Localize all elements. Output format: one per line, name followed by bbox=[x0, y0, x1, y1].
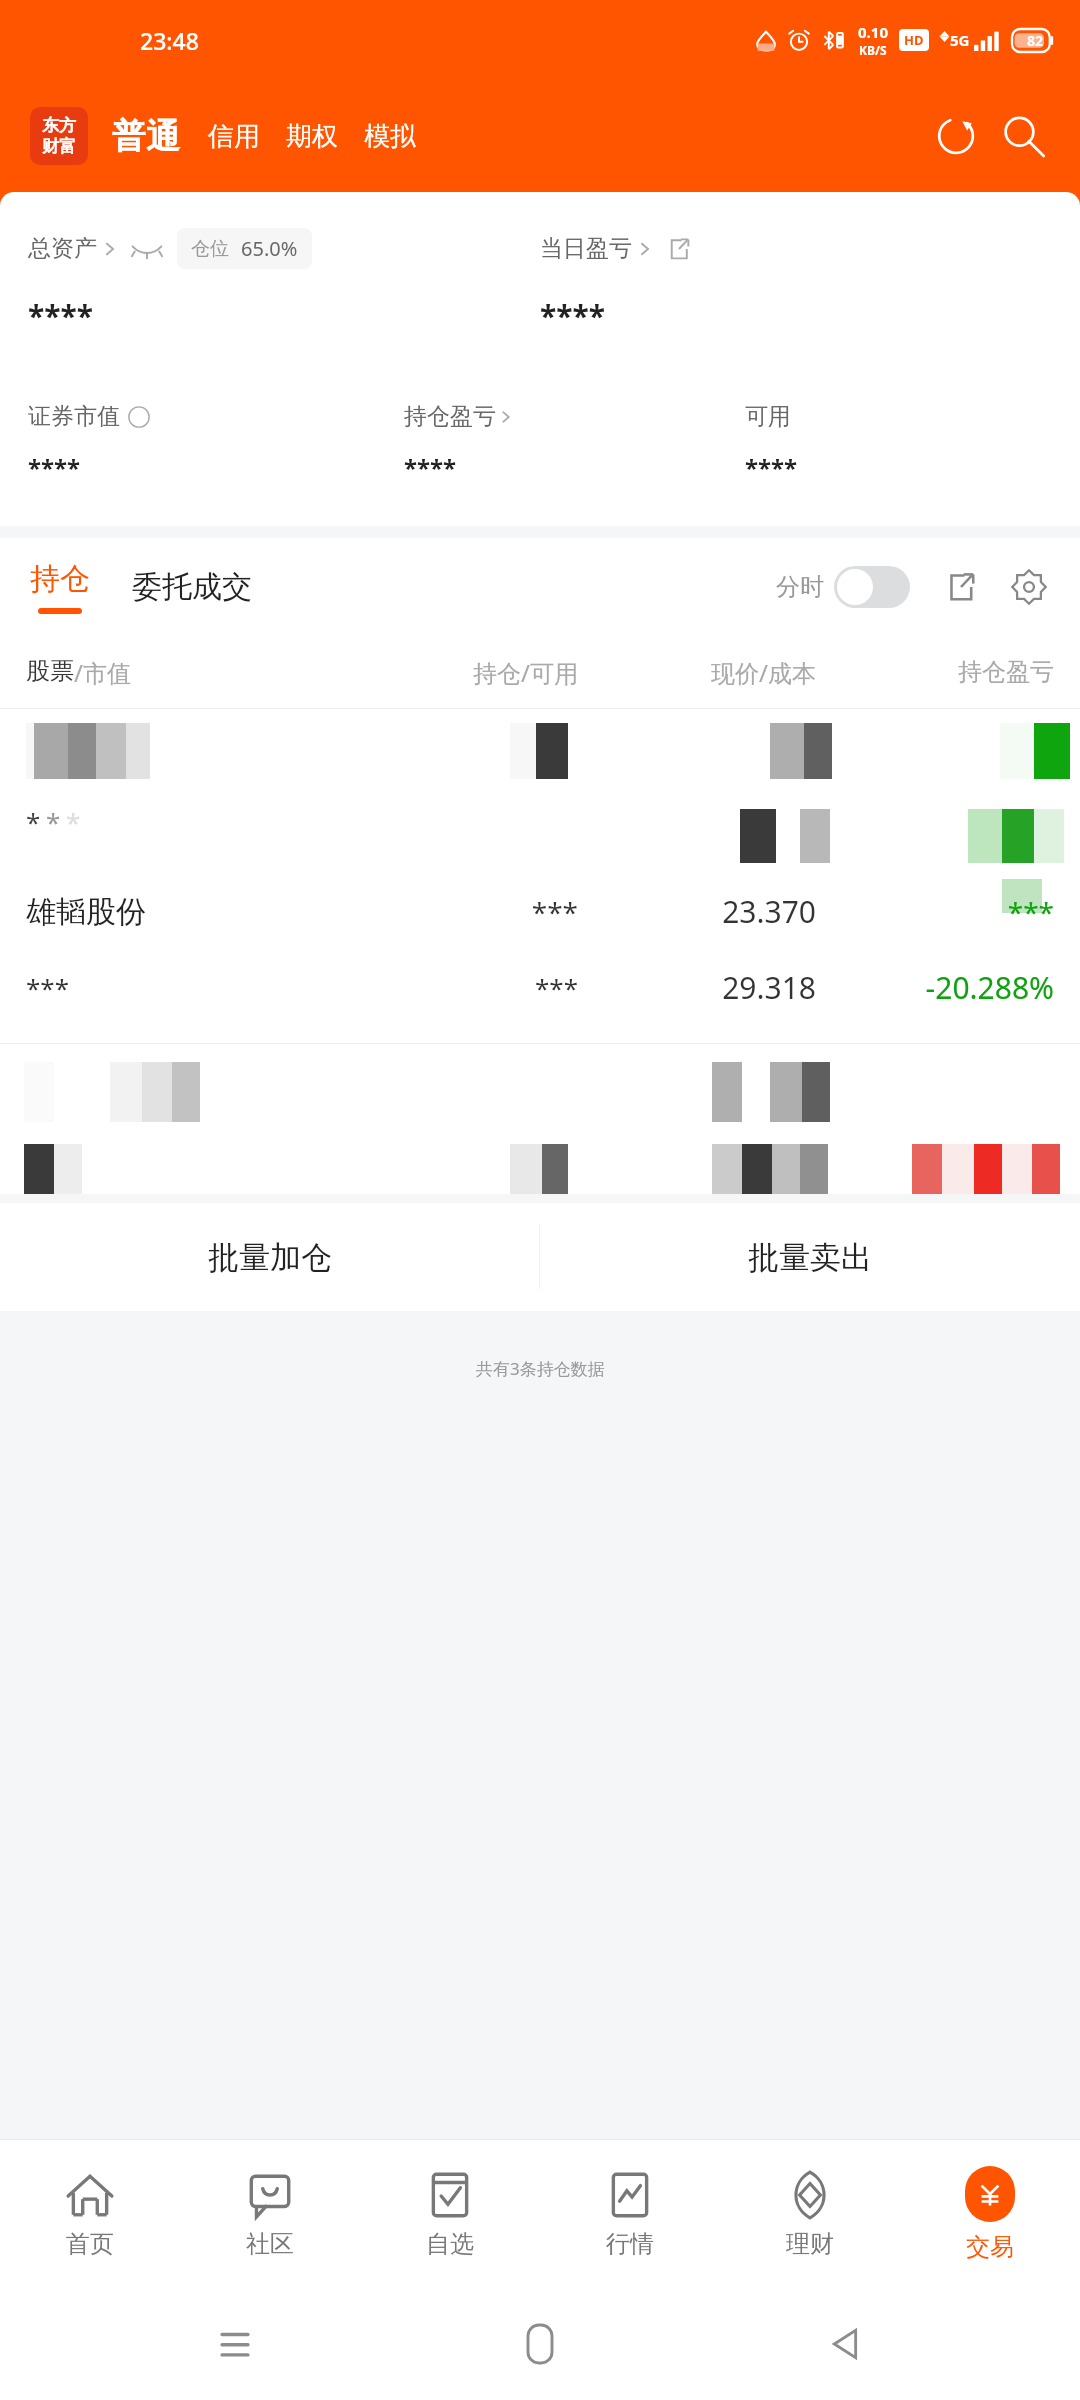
button[interactable]: 信用 bbox=[206, 120, 262, 153]
button[interactable]: Settings bbox=[1004, 562, 1054, 612]
staticText: 理财 bbox=[786, 2229, 834, 2259]
button[interactable]: 社区 bbox=[180, 2140, 360, 2288]
staticText: *** bbox=[340, 970, 578, 1005]
button[interactable]: 委托成交 bbox=[128, 560, 256, 614]
button[interactable]: Back bbox=[815, 2314, 875, 2374]
button[interactable]: 批量卖出 bbox=[540, 1203, 1080, 1311]
staticText: 自选 bbox=[426, 2229, 474, 2259]
button[interactable]: 仓位 bbox=[177, 228, 312, 269]
staticText: 65.0% bbox=[241, 235, 298, 262]
staticText: **** bbox=[540, 295, 1052, 336]
staticText: 股票 bbox=[26, 656, 74, 686]
staticText: *** bbox=[816, 893, 1054, 931]
staticText: 社区 bbox=[246, 2229, 294, 2259]
staticText: **** bbox=[404, 451, 745, 484]
button[interactable]: Open in new bbox=[936, 562, 986, 612]
staticText: 普通 bbox=[112, 115, 180, 158]
staticText: 持仓盈亏 bbox=[816, 657, 1054, 687]
staticText: 证券市值 bbox=[28, 402, 120, 431]
staticText: 29.318 bbox=[578, 967, 816, 1008]
staticText: 当日盈亏 bbox=[540, 234, 632, 263]
staticText: 财富 bbox=[42, 136, 76, 157]
staticText: 共有3条持仓数据 bbox=[476, 1357, 605, 1380]
button[interactable]: 持仓盈亏 bbox=[404, 402, 745, 431]
button[interactable]: 期权 bbox=[284, 120, 340, 153]
staticText: *** bbox=[340, 893, 578, 931]
staticText: 0.10 bbox=[858, 22, 888, 42]
staticText: **** bbox=[28, 451, 404, 484]
staticText: -20.288% bbox=[816, 967, 1054, 1008]
staticText: 期权 bbox=[286, 120, 338, 153]
staticText: 首页 bbox=[66, 2229, 114, 2259]
staticText: HD bbox=[904, 31, 924, 49]
staticText: 雄韬股份 bbox=[26, 893, 340, 931]
staticText: *** bbox=[26, 970, 340, 1005]
button[interactable]: 行情 bbox=[540, 2140, 720, 2288]
staticText: 分时 bbox=[776, 572, 824, 602]
button[interactable]: Home bbox=[510, 2314, 570, 2374]
button[interactable]: 首页 bbox=[0, 2140, 180, 2288]
staticText: 总资产 bbox=[28, 234, 97, 263]
staticText: 委托成交 bbox=[132, 568, 252, 606]
staticText: 5G bbox=[950, 30, 970, 50]
staticText: 可用 bbox=[745, 402, 791, 431]
button[interactable]: 总资产 bbox=[28, 234, 121, 263]
button[interactable]: 模拟 bbox=[362, 120, 418, 153]
button[interactable]: 交易 bbox=[900, 2140, 1080, 2288]
staticText: **** bbox=[28, 295, 540, 336]
button[interactable]: 东方 bbox=[30, 107, 88, 165]
staticText: 批量加仓 bbox=[208, 1238, 332, 1277]
staticText: * bbox=[46, 804, 61, 839]
staticText: 23.370 bbox=[578, 891, 816, 932]
button[interactable]: Hide amount bbox=[129, 236, 165, 262]
staticText: 持仓/可用 bbox=[340, 656, 578, 689]
staticText: * bbox=[26, 804, 41, 839]
button[interactable]: Toggle minute chart bbox=[834, 566, 910, 608]
staticText: 东方 bbox=[42, 115, 76, 136]
button[interactable]: 普通 bbox=[110, 115, 182, 158]
button[interactable]: 雄韬股份 bbox=[0, 869, 1080, 1044]
button[interactable]: 持仓 bbox=[26, 560, 94, 614]
staticText: 持仓 bbox=[30, 560, 90, 598]
button[interactable]: 自选 bbox=[360, 2140, 540, 2288]
staticText: 信用 bbox=[208, 120, 260, 153]
button[interactable]: Refresh bbox=[928, 108, 984, 164]
button[interactable]: Open detail bbox=[666, 236, 692, 262]
staticText: 批量卖出 bbox=[748, 1238, 872, 1277]
staticText: 现价/成本 bbox=[578, 656, 816, 689]
staticText: KB/S bbox=[859, 42, 887, 58]
staticText: 模拟 bbox=[364, 120, 416, 153]
button[interactable]: Recents bbox=[205, 2314, 265, 2374]
staticText: 交易 bbox=[966, 2232, 1014, 2262]
staticText: * bbox=[66, 804, 81, 839]
staticText: 行情 bbox=[606, 2229, 654, 2259]
button[interactable]: 理财 bbox=[720, 2140, 900, 2288]
staticText: 82 bbox=[1027, 31, 1044, 50]
staticText: 23:48 bbox=[140, 25, 199, 56]
staticText: 仓位 bbox=[191, 237, 229, 261]
staticText: 持仓盈亏 bbox=[404, 402, 496, 431]
button[interactable]: 当日盈亏 bbox=[540, 234, 656, 263]
button[interactable]: Search bbox=[994, 108, 1050, 164]
button[interactable]: 批量加仓 bbox=[0, 1203, 539, 1311]
staticText: **** bbox=[745, 451, 1052, 484]
staticText: /市值 bbox=[74, 656, 131, 689]
